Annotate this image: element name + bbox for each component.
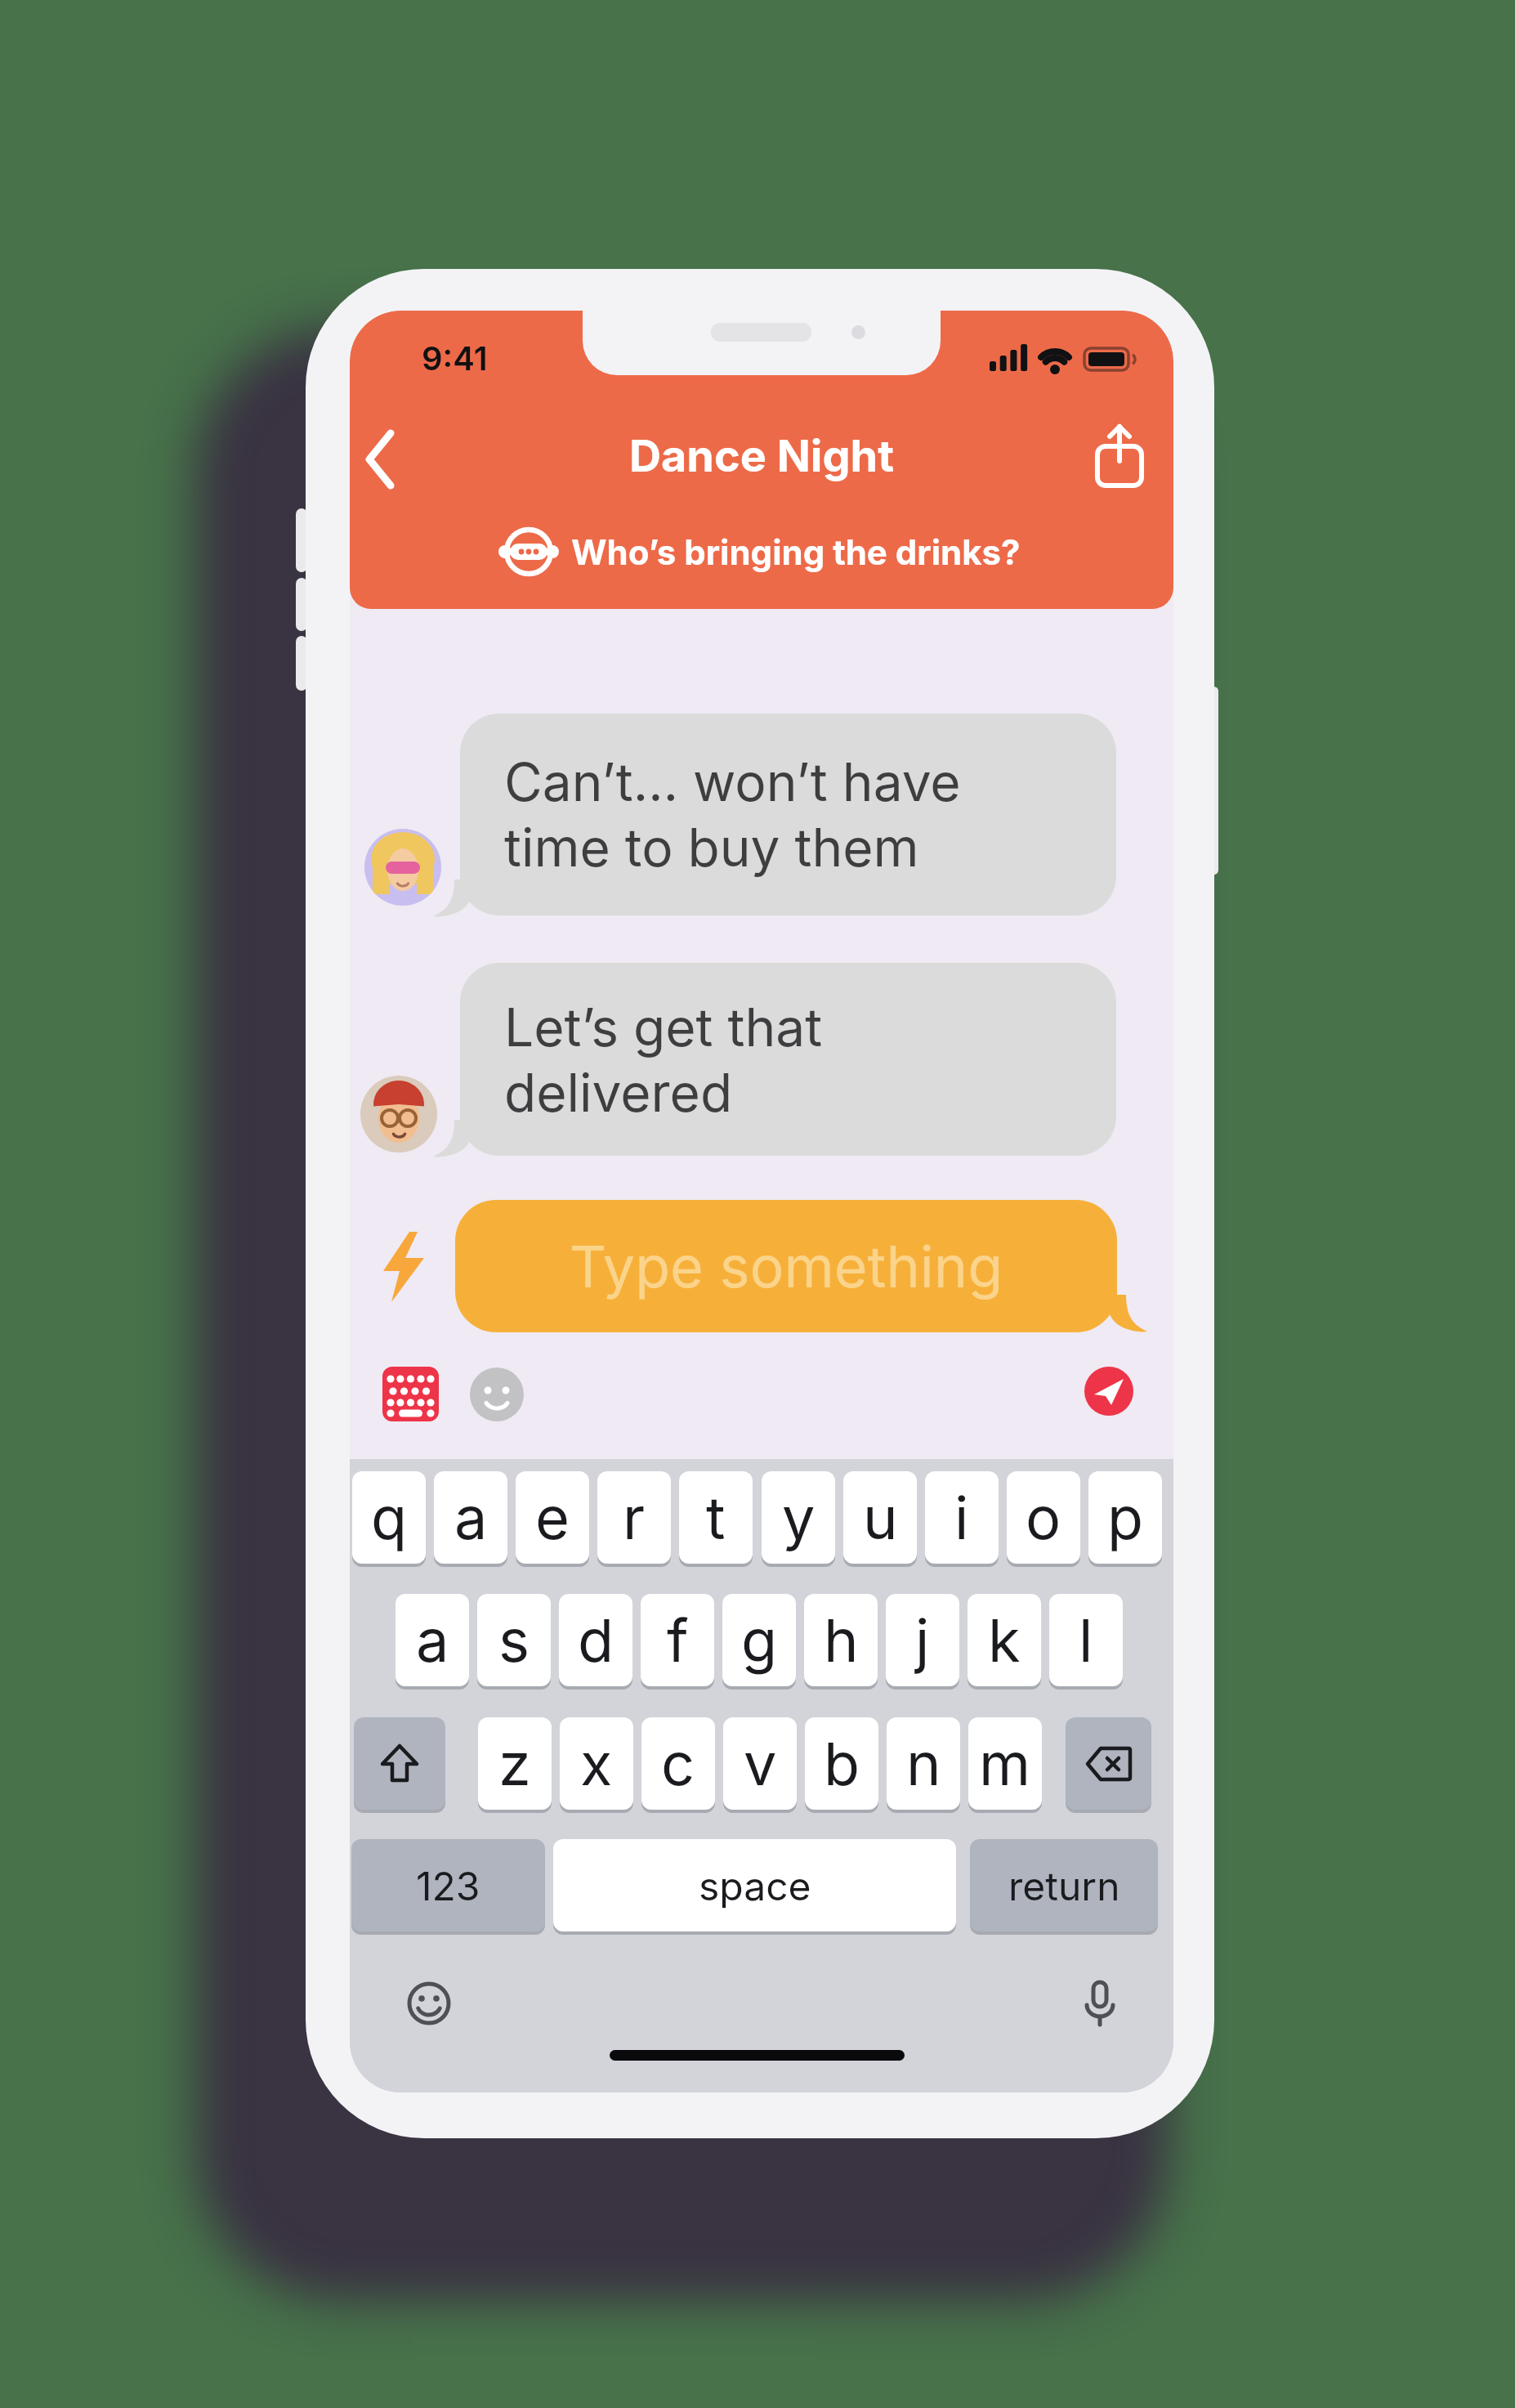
staticText: q	[371, 1482, 408, 1553]
button[interactable]: x	[560, 1717, 633, 1810]
staticText: Let’s get that delivered	[504, 996, 823, 1124]
button[interactable]: g	[722, 1594, 796, 1686]
button[interactable]: l	[1049, 1594, 1123, 1686]
staticText: n	[906, 1728, 941, 1799]
button[interactable]: y	[762, 1471, 835, 1564]
button[interactable]: e	[516, 1471, 589, 1564]
staticText: 9:41	[422, 338, 488, 378]
button[interactable]: j	[886, 1594, 959, 1686]
button[interactable]: c	[641, 1717, 715, 1810]
button[interactable]: k	[968, 1594, 1041, 1686]
button[interactable]: r	[597, 1471, 671, 1564]
staticText: d	[578, 1605, 614, 1676]
button[interactable]: b	[805, 1717, 878, 1810]
button[interactable]: z	[478, 1717, 552, 1810]
button[interactable]: return	[970, 1839, 1158, 1931]
staticText: c	[661, 1728, 695, 1799]
button[interactable]	[354, 1717, 445, 1810]
button[interactable]: u	[843, 1471, 917, 1564]
staticText: return	[1008, 1862, 1120, 1909]
staticText: 123	[416, 1862, 480, 1909]
staticText: i	[954, 1482, 969, 1553]
button[interactable]: o	[1007, 1471, 1080, 1564]
button[interactable]	[356, 425, 413, 494]
staticText: Dance Night	[629, 429, 894, 482]
staticText: z	[498, 1728, 531, 1799]
staticText: r	[623, 1482, 646, 1553]
button[interactable]	[1066, 1717, 1151, 1810]
staticText: v	[744, 1728, 777, 1799]
staticText: o	[1026, 1482, 1061, 1553]
staticText: s	[498, 1605, 530, 1676]
button[interactable]: m	[968, 1717, 1042, 1810]
button[interactable]	[382, 1367, 439, 1421]
button[interactable]	[1084, 1367, 1133, 1416]
button[interactable]: 123	[351, 1839, 545, 1931]
staticText: h	[824, 1605, 859, 1676]
staticText: Can’t… won’t have time to buy them	[504, 750, 961, 879]
staticText: u	[863, 1482, 898, 1553]
button[interactable]	[401, 1976, 457, 2031]
button[interactable]: v	[723, 1717, 797, 1810]
staticText: p	[1107, 1482, 1144, 1553]
staticText: Type something	[570, 1232, 1003, 1301]
button[interactable]: space	[553, 1839, 956, 1931]
staticText: Who’s bringing the drinks?	[571, 531, 1021, 573]
button[interactable]: h	[804, 1594, 878, 1686]
button[interactable]: f	[641, 1594, 714, 1686]
button[interactable]: n	[887, 1717, 960, 1810]
button[interactable]	[470, 1367, 524, 1421]
button[interactable]: a	[396, 1594, 469, 1686]
staticText: g	[741, 1605, 778, 1676]
button[interactable]: d	[559, 1594, 632, 1686]
button[interactable]: s	[477, 1594, 551, 1686]
staticText: f	[667, 1605, 689, 1676]
staticText: a	[454, 1482, 488, 1553]
button[interactable]: i	[925, 1471, 999, 1564]
button[interactable]: Type something	[455, 1200, 1117, 1332]
staticText: x	[580, 1728, 613, 1799]
button[interactable]	[1076, 1974, 1124, 2034]
button[interactable]: p	[1088, 1471, 1162, 1564]
staticText: e	[535, 1482, 570, 1553]
button[interactable]	[1089, 423, 1150, 489]
button[interactable]: t	[679, 1471, 753, 1564]
staticText: t	[706, 1482, 726, 1553]
staticText: y	[782, 1482, 816, 1553]
staticText: k	[988, 1605, 1021, 1676]
staticText: j	[915, 1605, 930, 1676]
staticText: b	[824, 1728, 860, 1799]
button[interactable]: a	[434, 1471, 507, 1564]
staticText: m	[979, 1728, 1031, 1799]
staticText: space	[699, 1862, 811, 1909]
button[interactable]: q	[352, 1471, 426, 1564]
staticText: l	[1079, 1605, 1093, 1676]
staticText: a	[416, 1605, 449, 1676]
